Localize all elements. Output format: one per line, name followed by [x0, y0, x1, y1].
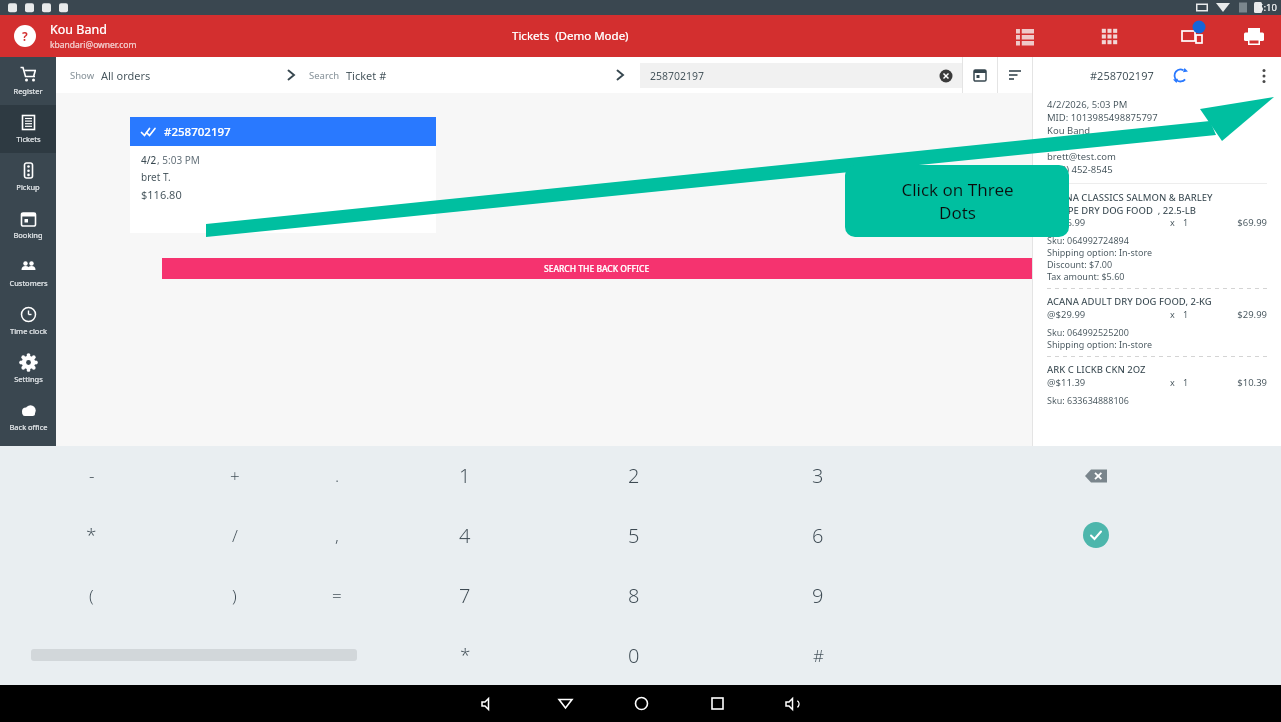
button[interactable]: 258702197: [640, 63, 962, 88]
button[interactable]: Expand search filter: [610, 65, 630, 85]
staticText: Pickup: [16, 182, 40, 192]
staticText: Search: [309, 69, 340, 82]
button[interactable]: Space: [0, 625, 388, 685]
button[interactable]: Grid view: [1089, 16, 1129, 56]
button[interactable]: Back: [545, 685, 585, 722]
button[interactable]: Help: [14, 25, 36, 47]
button[interactable]: 5: [542, 505, 726, 565]
button[interactable]: 0: [542, 625, 726, 685]
button[interactable]: 1: [388, 446, 542, 505]
button[interactable]: 8: [542, 565, 726, 625]
staticText: Register: [13, 86, 43, 96]
staticText: 1: [1183, 216, 1217, 228]
staticText: 258702197: [650, 69, 705, 83]
staticText: Ticket #: [346, 68, 387, 83]
staticText: MID: 1013985498875797: [1047, 111, 1158, 124]
button[interactable]: Time clock: [0, 297, 56, 345]
staticText: Time clock: [10, 326, 47, 336]
button[interactable]: Booking: [0, 201, 56, 249]
staticText: 7: [459, 582, 471, 609]
staticText: @$11.39: [1047, 376, 1170, 389]
button[interactable]: SEARCH THE BACK OFFICE: [162, 258, 1032, 279]
button[interactable]: #258702197: [130, 117, 436, 233]
staticText: Back office: [9, 422, 48, 432]
button[interactable]: 2: [542, 446, 726, 505]
staticText: 5: [628, 522, 640, 549]
button[interactable]: More options: [1249, 60, 1279, 90]
staticText: 1: [1183, 308, 1217, 320]
button[interactable]: ): [183, 565, 286, 625]
button[interactable]: Print: [1233, 16, 1273, 56]
button[interactable]: Refresh: [1168, 63, 1192, 87]
button[interactable]: 6: [726, 505, 910, 565]
staticText: 5:10: [1258, 1, 1277, 14]
staticText: bret test: [1047, 137, 1085, 150]
button[interactable]: ,: [286, 505, 388, 565]
button[interactable]: 3: [726, 446, 910, 505]
staticText: ACANA ADULT DRY DOG FOOD, 2-KG: [1047, 295, 1212, 308]
staticText: #258702197: [164, 124, 231, 140]
staticText: #: [813, 644, 824, 667]
button[interactable]: Back office: [0, 393, 56, 441]
button[interactable]: Pickup: [0, 153, 56, 201]
staticText: *: [460, 642, 471, 668]
button[interactable]: =: [286, 565, 388, 625]
button[interactable]: Expand show filter: [281, 65, 301, 85]
staticText: ACANA CLASSICS SALMON & BARLEY RECIPE DR…: [1047, 191, 1213, 216]
staticText: @$76.99: [1047, 216, 1170, 229]
staticText: Shipping option: In-store: [1047, 246, 1153, 258]
button[interactable]: *: [0, 505, 183, 565]
button[interactable]: Show: [68, 62, 153, 89]
button[interactable]: Search: [309, 62, 387, 89]
button[interactable]: 9: [726, 565, 910, 625]
staticText: x: [1170, 308, 1175, 320]
staticText: Tax amount: $5.60: [1047, 270, 1125, 282]
staticText: -: [89, 464, 95, 487]
button[interactable]: #: [726, 625, 910, 685]
staticText: (408) 452-8545: [1047, 163, 1113, 176]
button[interactable]: Sort: [998, 57, 1032, 93]
staticText: brett@test.com: [1047, 150, 1116, 163]
staticText: 4/2: [141, 153, 157, 167]
staticText: Customers: [9, 278, 48, 288]
button[interactable]: (: [0, 565, 183, 625]
button[interactable]: Enter: [910, 505, 1281, 565]
button[interactable]: Backspace: [910, 446, 1281, 505]
button[interactable]: Settings: [0, 345, 56, 393]
button[interactable]: List view: [1005, 16, 1045, 56]
button[interactable]: *: [388, 625, 542, 685]
staticText: x: [1170, 376, 1175, 388]
button[interactable]: +: [183, 446, 286, 505]
staticText: ARK C LICKB CKN 2OZ: [1047, 363, 1146, 376]
button[interactable]: Volume down: [469, 685, 509, 722]
staticText: ): [232, 584, 237, 607]
button[interactable]: Home: [621, 685, 661, 722]
staticText: $29.99: [1217, 308, 1267, 321]
staticText: ,: [335, 524, 339, 547]
button[interactable]: Pick date: [963, 57, 997, 93]
staticText: Shipping option: In-store: [1047, 338, 1153, 350]
button[interactable]: Volume up: [773, 685, 813, 722]
button[interactable]: 7: [388, 565, 542, 625]
button[interactable]: 4: [388, 505, 542, 565]
button[interactable]: Connected devices, 1 notification: [1173, 16, 1213, 56]
staticText: 6: [812, 522, 824, 549]
button[interactable]: Tickets: [0, 105, 56, 153]
staticText: Tickets: [16, 134, 41, 144]
staticText: $116.80: [141, 187, 182, 202]
staticText: Click on Three Dots: [901, 178, 1014, 224]
button[interactable]: Clear search: [938, 68, 954, 84]
staticText: Tickets (Demo Mode): [512, 28, 629, 44]
staticText: Sku: 064992525200: [1047, 326, 1129, 338]
button[interactable]: Register: [0, 57, 56, 105]
staticText: 4: [459, 522, 471, 549]
staticText: 1: [1183, 376, 1217, 388]
button[interactable]: Customers: [0, 249, 56, 297]
button[interactable]: Recent apps: [697, 685, 737, 722]
staticText: Booking: [13, 230, 43, 240]
staticText: bret T.: [141, 170, 171, 184]
button[interactable]: /: [183, 505, 286, 565]
